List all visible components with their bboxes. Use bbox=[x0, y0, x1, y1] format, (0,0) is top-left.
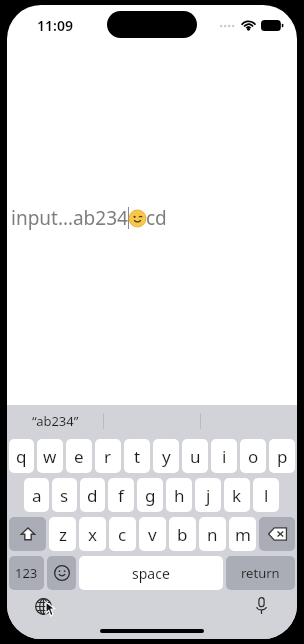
button[interactable]: o bbox=[240, 439, 266, 473]
button[interactable]: Shift bbox=[9, 517, 46, 551]
staticText: r bbox=[104, 445, 112, 468]
staticText: input…ab234 bbox=[11, 205, 128, 231]
staticText: b bbox=[177, 523, 188, 546]
button[interactable]: w bbox=[37, 439, 63, 473]
staticText: w bbox=[43, 445, 57, 468]
button[interactable]: t bbox=[124, 439, 150, 473]
button[interactable]: b bbox=[169, 517, 196, 551]
button[interactable]: Backspace bbox=[259, 517, 295, 551]
button[interactable]: a bbox=[24, 478, 49, 512]
button[interactable]: z bbox=[49, 517, 76, 551]
button[interactable]: v bbox=[139, 517, 166, 551]
staticText: j bbox=[206, 484, 211, 507]
button[interactable]: j bbox=[195, 478, 221, 512]
staticText: p bbox=[277, 445, 288, 468]
staticText: space bbox=[132, 564, 170, 583]
button[interactable]: r bbox=[95, 439, 121, 473]
staticText: k bbox=[232, 484, 242, 507]
button[interactable]: q bbox=[9, 439, 34, 473]
button[interactable]: Change keyboard bbox=[31, 594, 55, 618]
button[interactable]: d bbox=[80, 478, 105, 512]
staticText: a bbox=[32, 484, 42, 507]
staticText: c bbox=[118, 523, 127, 546]
button[interactable]: n bbox=[199, 517, 226, 551]
staticText: n bbox=[207, 523, 218, 546]
staticText: e bbox=[74, 445, 84, 468]
staticText: v bbox=[148, 523, 157, 546]
button[interactable]: “ab234” bbox=[7, 405, 103, 437]
button[interactable]: Dictate bbox=[249, 594, 273, 618]
staticText: s bbox=[60, 484, 69, 507]
staticText: i bbox=[222, 445, 227, 468]
staticText: q bbox=[16, 445, 27, 468]
button[interactable]: g bbox=[137, 478, 163, 512]
staticText: z bbox=[59, 523, 67, 546]
staticText: m bbox=[235, 523, 251, 546]
button[interactable]: m bbox=[229, 517, 256, 551]
button[interactable]: return bbox=[226, 556, 295, 590]
staticText: y bbox=[162, 445, 171, 468]
button[interactable]: input…ab234 bbox=[11, 205, 297, 231]
button[interactable]: x bbox=[79, 517, 106, 551]
button[interactable]: c bbox=[109, 517, 136, 551]
staticText: f bbox=[118, 484, 124, 507]
button[interactable]: s bbox=[52, 478, 77, 512]
staticText: x bbox=[88, 523, 97, 546]
staticText: d bbox=[87, 484, 98, 507]
staticText: o bbox=[248, 445, 259, 468]
staticText: g bbox=[145, 484, 156, 507]
staticText: h bbox=[174, 484, 185, 507]
staticText: cd bbox=[146, 205, 167, 231]
button[interactable]: h bbox=[166, 478, 192, 512]
button[interactable]: l bbox=[253, 478, 279, 512]
staticText: return bbox=[241, 564, 280, 582]
button[interactable]: k bbox=[224, 478, 250, 512]
staticText: “ab234” bbox=[32, 412, 79, 430]
button[interactable]: f bbox=[108, 478, 134, 512]
staticText: 123 bbox=[15, 564, 38, 582]
button[interactable]: p bbox=[269, 439, 295, 473]
button[interactable]: 123 bbox=[9, 556, 44, 590]
staticText: t bbox=[134, 445, 141, 468]
button[interactable]: Emoji bbox=[47, 556, 76, 590]
button[interactable]: y bbox=[153, 439, 179, 473]
button[interactable]: u bbox=[182, 439, 208, 473]
button[interactable]: e bbox=[66, 439, 92, 473]
staticText: u bbox=[190, 445, 201, 468]
staticText: l bbox=[264, 484, 269, 507]
button[interactable]: space bbox=[79, 556, 223, 590]
button[interactable]: i bbox=[211, 439, 237, 473]
staticText: 11:09 bbox=[37, 16, 73, 35]
